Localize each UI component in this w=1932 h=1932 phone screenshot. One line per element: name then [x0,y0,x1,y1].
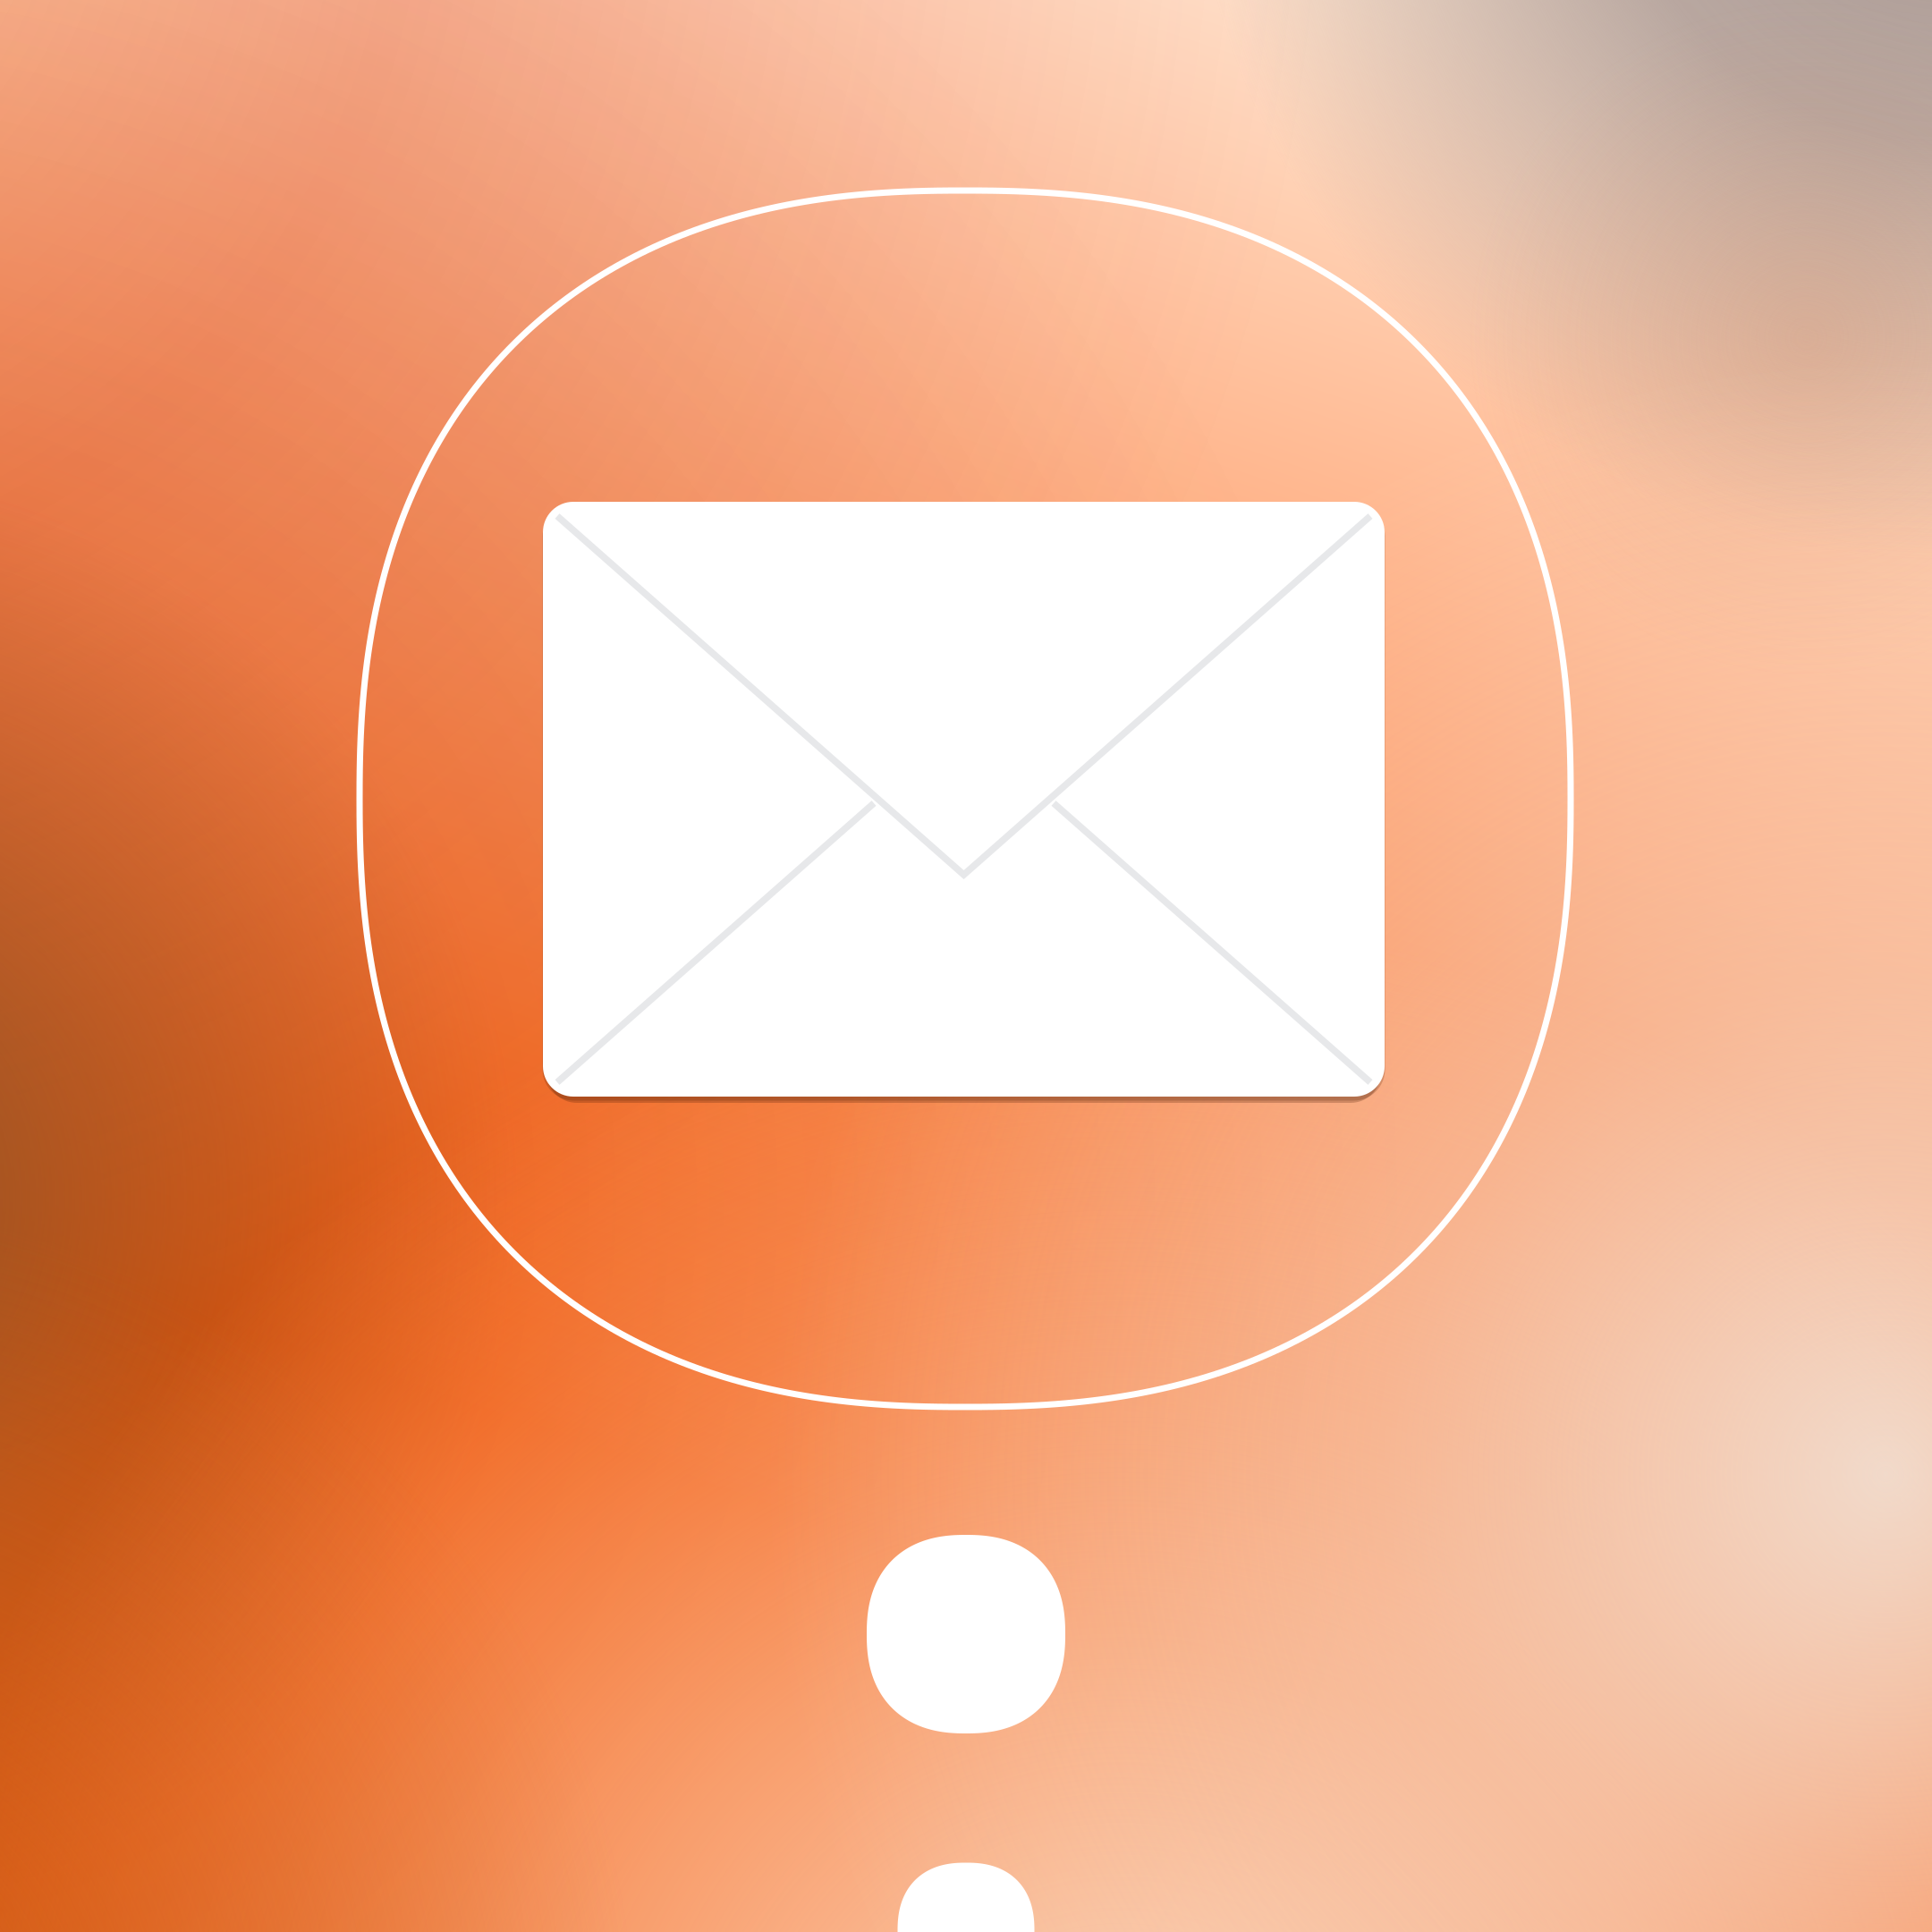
button[interactable]: Open Mail notification [360,191,1571,1407]
